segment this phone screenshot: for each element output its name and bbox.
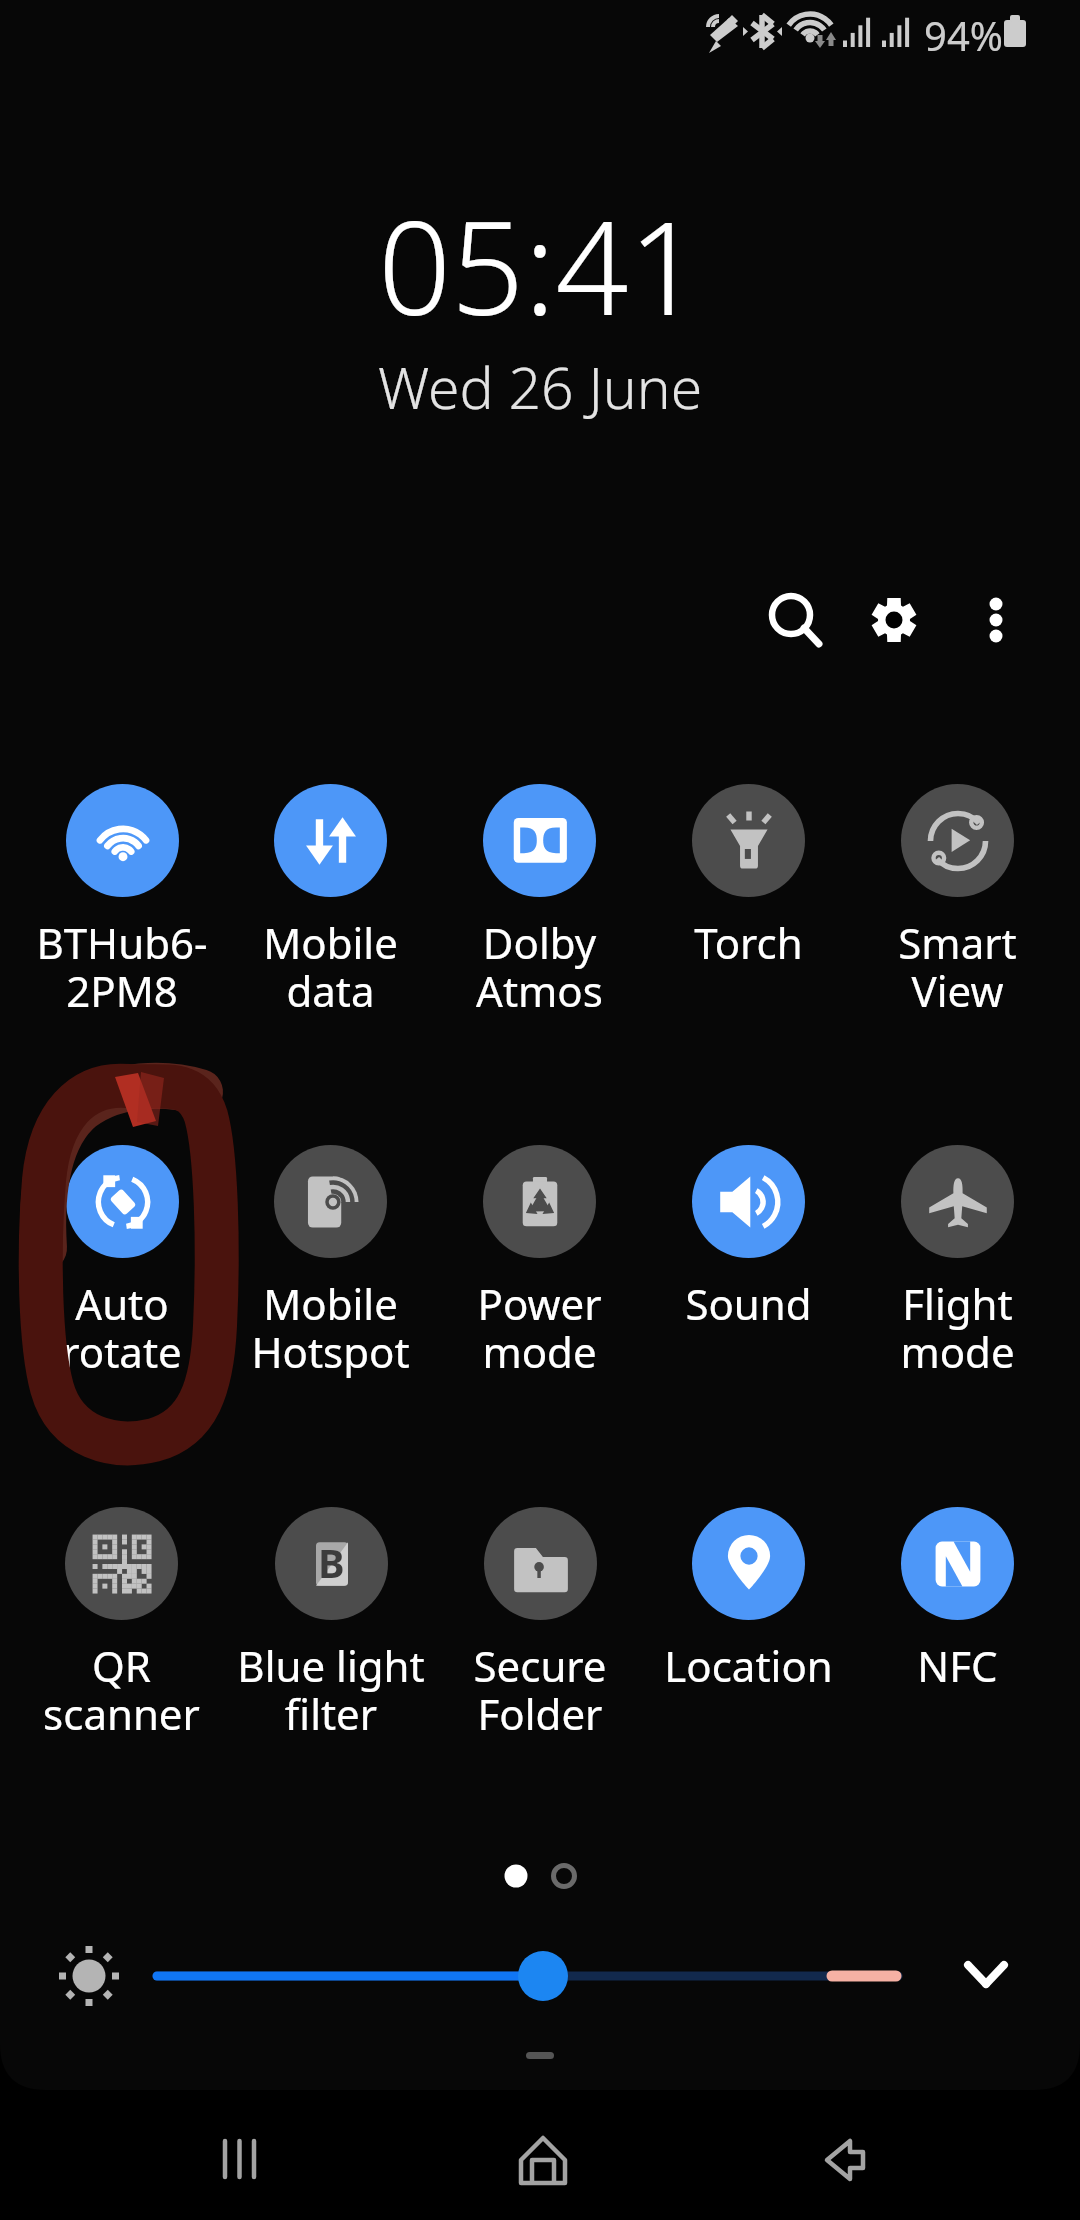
staticText: Flight mode <box>900 1275 1015 1380</box>
button[interactable]: Flight mode <box>853 1135 1062 1385</box>
button[interactable]: Torch <box>644 774 853 1024</box>
staticText: Auto rotate <box>62 1275 182 1380</box>
button[interactable]: B <box>226 1497 435 1747</box>
button[interactable]: Auto rotate <box>17 1135 226 1385</box>
button[interactable]: Mobile Hotspot <box>226 1135 435 1385</box>
button[interactable]: Back <box>785 2100 905 2220</box>
button[interactable]: Search <box>742 566 852 676</box>
staticText: Secure Folder <box>473 1637 607 1742</box>
button[interactable]: NFC <box>853 1497 1062 1747</box>
staticText: BTHub6- 2PM8 <box>36 914 208 1019</box>
staticText: 94% <box>924 8 1003 62</box>
staticText: Wed 26 June <box>378 348 703 426</box>
staticText: Torch <box>694 914 803 971</box>
button[interactable]: Settings <box>839 565 949 675</box>
staticText: 05:41 <box>378 178 702 352</box>
button[interactable]: Smart View <box>853 774 1062 1024</box>
staticText: Mobile Hotspot <box>251 1275 410 1380</box>
button[interactable]: Recent apps <box>180 2100 300 2220</box>
button[interactable]: Sound <box>644 1135 853 1385</box>
button[interactable]: BTHub6- 2PM8 <box>17 774 226 1024</box>
staticText: Power mode <box>477 1275 602 1380</box>
staticText: NFC <box>917 1637 998 1694</box>
button[interactable]: Secure Folder <box>435 1497 644 1747</box>
button[interactable]: Location <box>644 1497 853 1747</box>
staticText: B <box>318 1535 345 1589</box>
staticText: Dolby Atmos <box>476 914 603 1019</box>
button[interactable]: QR scanner <box>17 1497 226 1747</box>
button[interactable]: Power mode <box>435 1135 644 1385</box>
button[interactable]: Dolby Atmos <box>435 774 644 1024</box>
button[interactable]: Expand quick settings <box>940 1930 1032 2022</box>
staticText: QR scanner <box>43 1637 200 1742</box>
button[interactable]: Home <box>483 2100 603 2220</box>
staticText: Mobile data <box>263 914 398 1019</box>
button[interactable]: More options <box>941 565 1051 675</box>
button[interactable]: Mobile data <box>226 774 435 1024</box>
staticText: Location <box>664 1637 833 1694</box>
staticText: Sound <box>685 1275 812 1332</box>
staticText: Blue light filter <box>237 1637 425 1742</box>
staticText: Smart View <box>898 914 1017 1019</box>
